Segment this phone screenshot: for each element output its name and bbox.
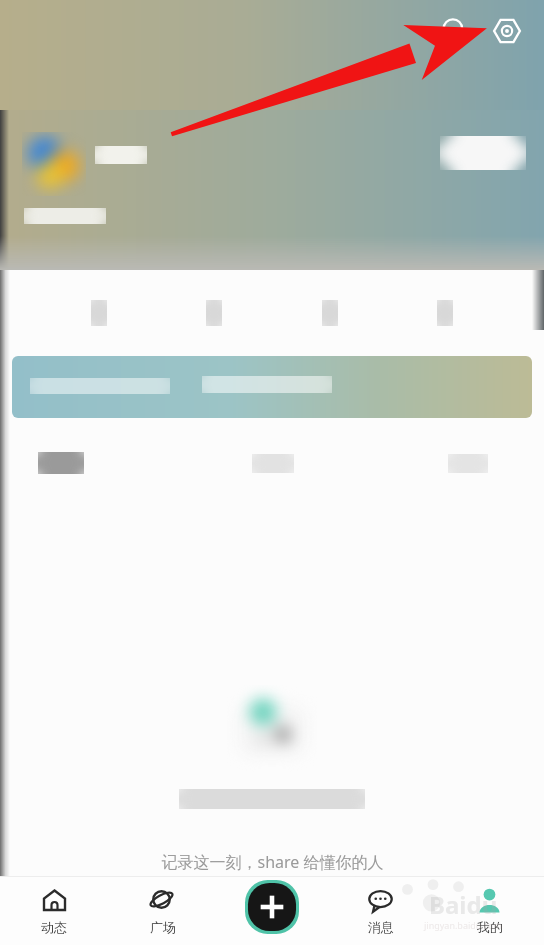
button[interactable]: 我的 — [435, 876, 544, 945]
button[interactable]: 消息 — [326, 876, 435, 945]
staticText: 记录这一刻，share 给懂你的人 — [161, 851, 384, 873]
button[interactable] — [428, 296, 462, 330]
staticText: 我的 — [477, 919, 503, 935]
button[interactable]: 广场 — [108, 876, 217, 945]
button[interactable] — [82, 296, 116, 330]
staticText: 动态 — [41, 919, 67, 935]
button[interactable] — [363, 440, 544, 486]
staticText: 消息 — [368, 919, 394, 935]
button[interactable] — [12, 356, 532, 418]
button[interactable] — [182, 440, 363, 486]
staticText: 广场 — [150, 919, 176, 935]
button[interactable]: Search — [432, 8, 478, 54]
staticText: jingyan.baidu.com — [424, 919, 502, 931]
button[interactable]: 动态 — [0, 876, 108, 945]
staticText: Baidu — [429, 888, 498, 921]
button[interactable]: Scan — [484, 8, 530, 54]
button[interactable] — [197, 296, 231, 330]
button[interactable] — [0, 440, 182, 486]
button[interactable]: Create post — [245, 880, 299, 934]
button[interactable] — [313, 296, 347, 330]
